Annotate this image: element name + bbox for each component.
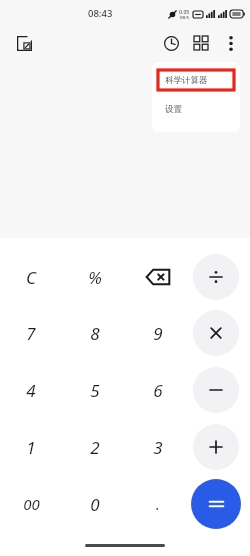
button[interactable]: More options <box>216 28 246 58</box>
button[interactable]: . <box>132 482 184 526</box>
staticText: 设置 <box>165 104 182 115</box>
button[interactable]: 4 <box>5 368 57 412</box>
button[interactable]: 设置 <box>158 100 234 118</box>
button[interactable]: 7 <box>5 311 57 355</box>
button[interactable]: 科学计算器 <box>158 70 234 90</box>
button[interactable]: Apps <box>186 28 216 58</box>
staticText: 科学计算器 <box>165 75 208 86</box>
button[interactable]: 2 <box>69 425 121 469</box>
button[interactable]: 6 <box>132 368 184 412</box>
button[interactable]: 8 <box>69 311 121 355</box>
staticText: % <box>88 266 102 289</box>
button[interactable]: C <box>5 255 57 299</box>
button[interactable]: Equals <box>191 479 241 529</box>
staticText: 2 <box>90 436 100 459</box>
staticText: 0 <box>90 493 100 516</box>
button[interactable]: Multiply <box>193 310 239 356</box>
staticText: 8 <box>90 322 100 345</box>
staticText: 0.05 <box>179 8 190 15</box>
button[interactable]: Unit converter <box>10 29 38 57</box>
button[interactable]: Backspace <box>132 255 184 299</box>
button[interactable]: % <box>69 255 121 299</box>
button[interactable]: Divide <box>193 254 239 300</box>
staticText: 7 <box>26 322 36 345</box>
staticText: 5 <box>90 379 100 402</box>
button[interactable]: 1 <box>5 425 57 469</box>
staticText: 1 <box>26 436 36 459</box>
staticText: . <box>156 494 160 514</box>
button[interactable]: Subtract <box>193 367 239 413</box>
button[interactable]: 00 <box>5 482 57 526</box>
staticText: 4 <box>26 379 36 402</box>
button[interactable]: 9 <box>132 311 184 355</box>
staticText: 9 <box>153 322 163 345</box>
button[interactable]: 5 <box>69 368 121 412</box>
staticText: 3 <box>153 436 163 459</box>
button[interactable]: Add <box>193 424 239 470</box>
staticText: 6 <box>153 379 163 402</box>
staticText: 08:43 <box>88 7 113 20</box>
staticText: C <box>26 266 36 289</box>
button[interactable]: History <box>156 28 186 58</box>
staticText: 00 <box>23 494 40 514</box>
button[interactable]: 3 <box>132 425 184 469</box>
staticText: KB/S <box>180 15 189 20</box>
button[interactable]: 0 <box>69 482 121 526</box>
